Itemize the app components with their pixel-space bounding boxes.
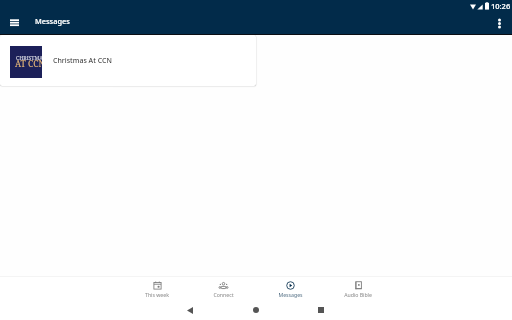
staticText: 10:26 [491, 1, 511, 11]
button[interactable]: Back [181, 301, 199, 319]
staticText: Messages [278, 291, 303, 298]
staticText: This week [145, 291, 169, 298]
button[interactable]: More options [489, 13, 509, 33]
staticText: CHRISTMAS [16, 54, 42, 61]
button[interactable]: Open navigation menu [4, 12, 24, 32]
button[interactable]: Connect [190, 277, 257, 298]
button[interactable]: Home [247, 301, 265, 319]
button[interactable]: Audio Bible [324, 277, 391, 298]
staticText: Christmas At CCN [53, 56, 112, 66]
button[interactable]: Messages [257, 277, 324, 298]
button[interactable]: CHRISTMAS [0, 35, 256, 86]
staticText: Audio Bible [344, 291, 372, 298]
staticText: AT CCN [15, 58, 42, 70]
staticText: Connect [213, 291, 234, 298]
button[interactable]: Recent apps [312, 301, 330, 319]
button[interactable]: This week [123, 277, 190, 298]
staticText: Messages [35, 16, 70, 26]
